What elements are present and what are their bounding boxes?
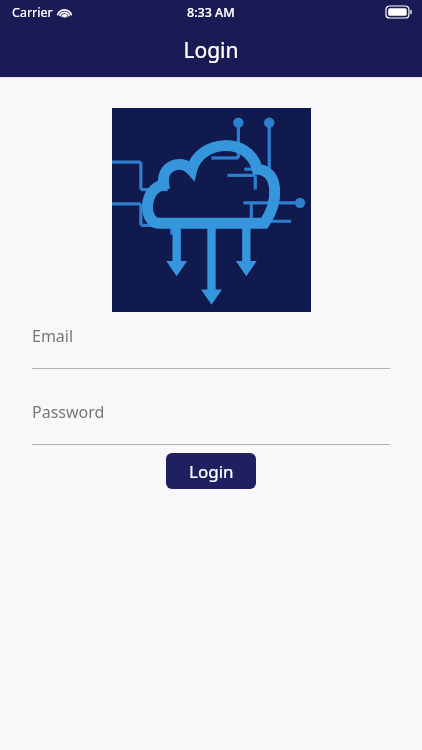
staticText: Password: [32, 401, 105, 423]
button[interactable]: Email: [32, 325, 390, 369]
staticText: Email: [32, 325, 74, 347]
staticText: 8:33 AM: [187, 4, 235, 21]
staticText: Carrier: [12, 4, 53, 21]
button[interactable]: Password: [32, 401, 390, 445]
button[interactable]: Login: [166, 453, 256, 489]
staticText: Login: [189, 460, 234, 483]
other: Cloud download logo: [112, 108, 311, 312]
staticText: Login: [183, 36, 239, 65]
